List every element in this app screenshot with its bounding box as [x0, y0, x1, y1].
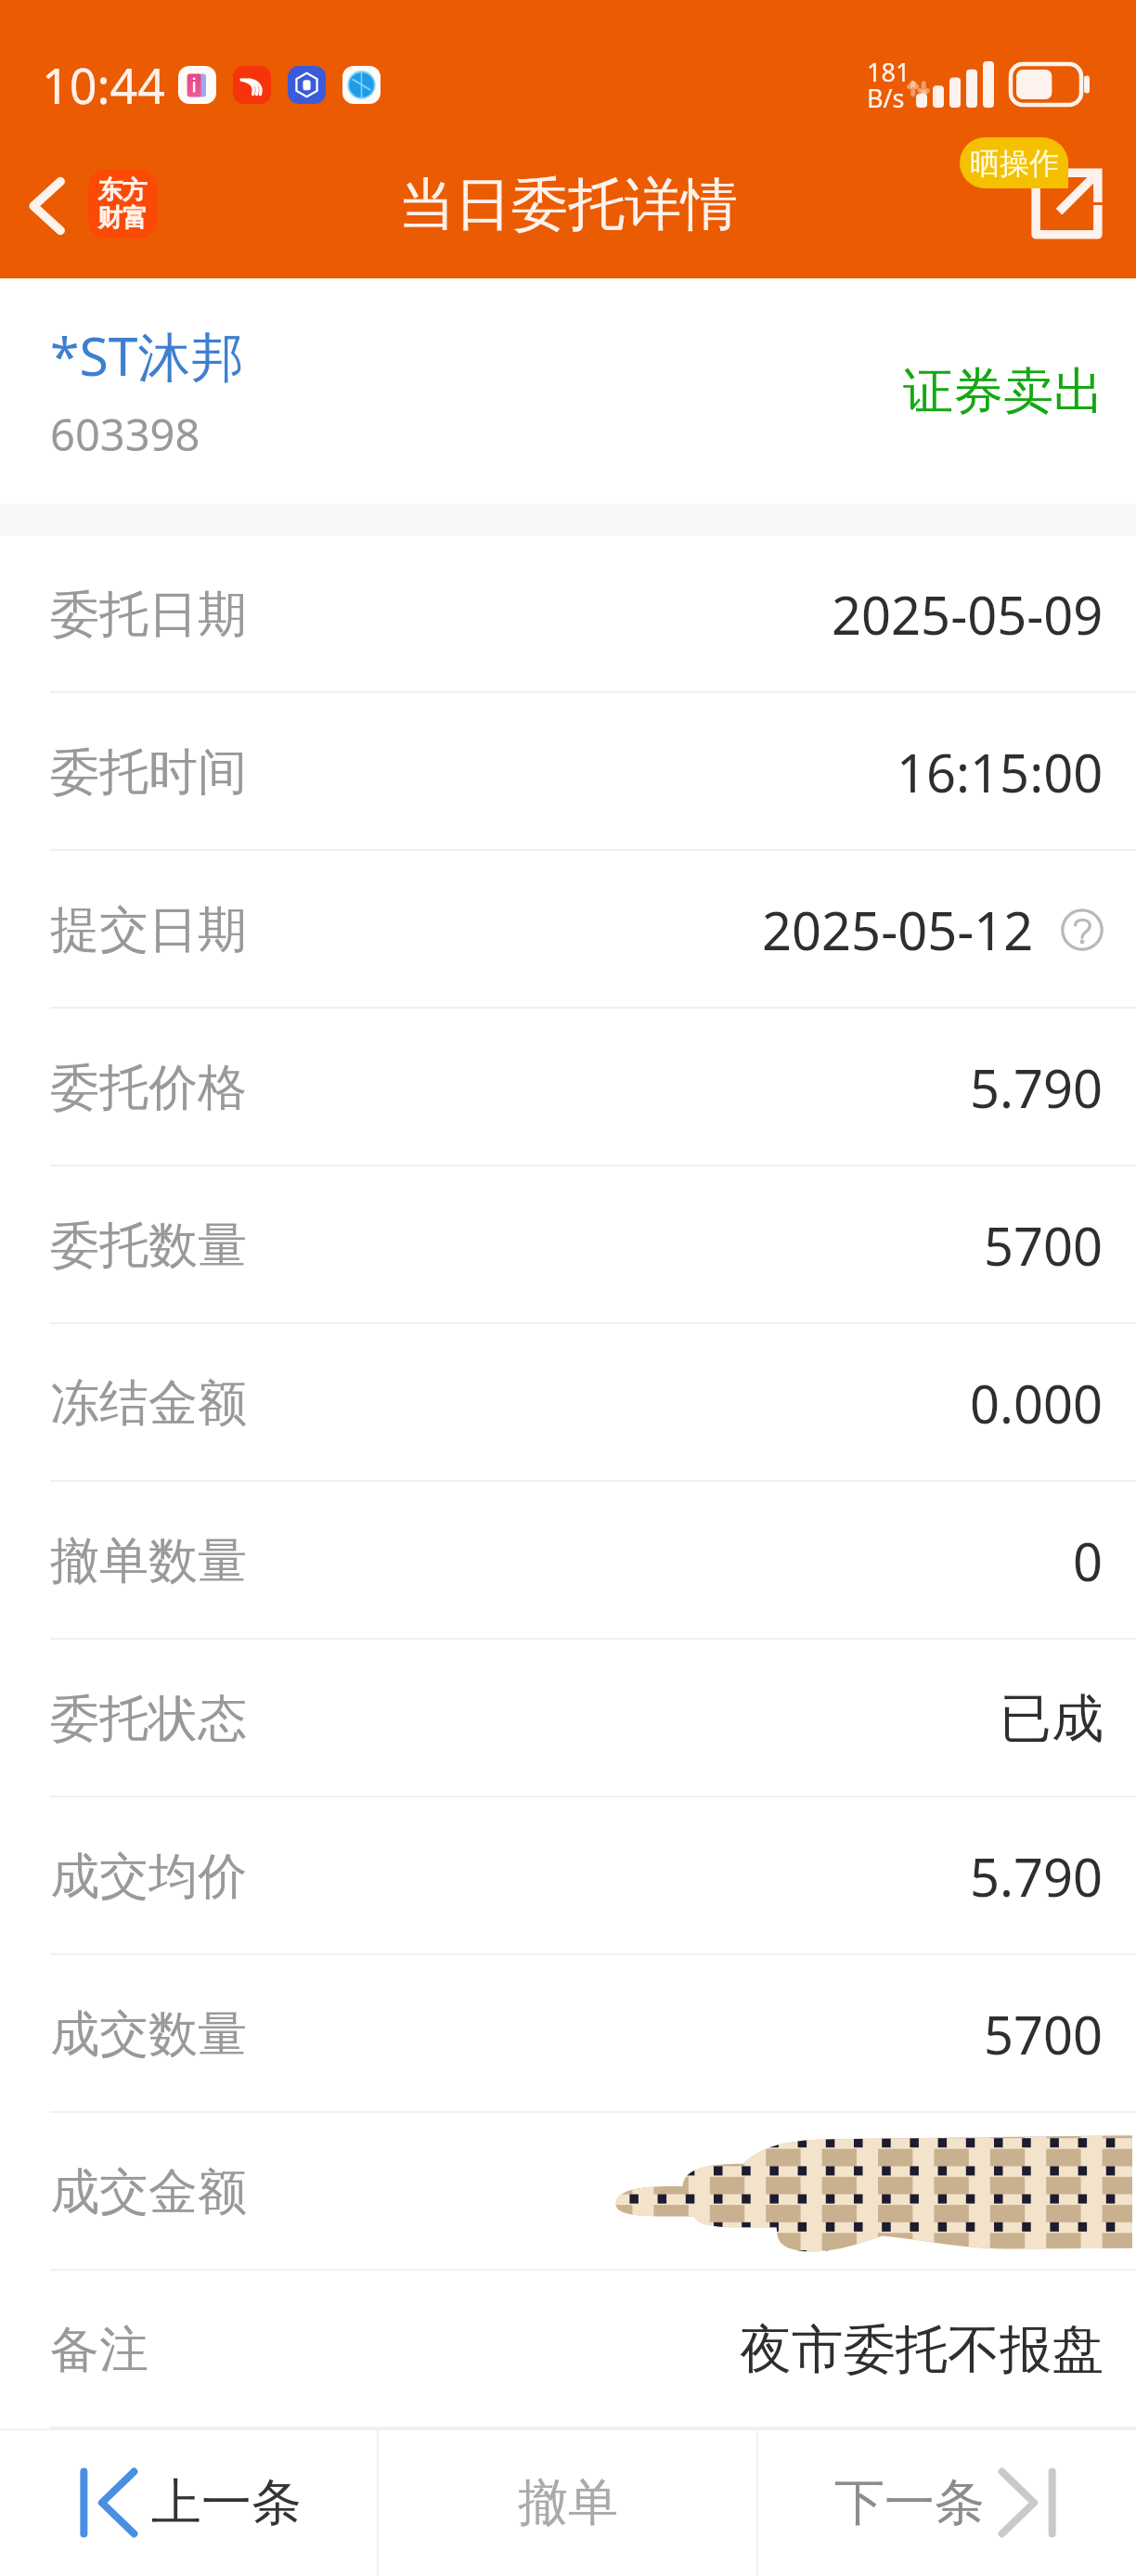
staticText: 已成: [1000, 1686, 1104, 1752]
button[interactable]: 委托状态: [0, 1640, 1136, 1797]
staticText: 16:15:00: [897, 737, 1104, 807]
button[interactable]: 委托价格: [0, 1009, 1136, 1166]
staticText: 2025-05-12: [762, 895, 1034, 965]
button[interactable]: 下一条: [758, 2428, 1136, 2576]
button[interactable]: 晒操作: [960, 137, 1068, 188]
staticText: 撤单: [518, 2471, 618, 2534]
staticText: 证券卖出: [903, 360, 1104, 423]
staticText: 5.790: [970, 1052, 1104, 1123]
staticText: 委托价格: [50, 1057, 247, 1119]
staticText: 0.000: [970, 1368, 1104, 1438]
button[interactable]: Back: [0, 130, 88, 278]
staticText: 0: [1073, 1526, 1104, 1596]
staticText: 委托时间: [50, 741, 247, 804]
staticText: 成交金额: [50, 2161, 247, 2223]
staticText: *ST沐邦: [50, 319, 244, 392]
staticText: 东方 财富: [97, 174, 148, 234]
button[interactable]: 委托日期: [0, 535, 1136, 693]
staticText: 603398: [50, 405, 200, 464]
button[interactable]: 提交日期: [0, 851, 1136, 1009]
button[interactable]: 冻结金额: [0, 1324, 1136, 1482]
button[interactable]: 成交金额: [0, 2113, 1136, 2271]
staticText: 晒操作: [970, 145, 1059, 182]
staticText: 委托状态: [50, 1688, 247, 1750]
button[interactable]: Share: [1006, 130, 1136, 278]
staticText: 成交数量: [50, 2003, 247, 2066]
button[interactable]: *ST沐邦: [0, 278, 1136, 504]
button[interactable]: 备注: [0, 2271, 1136, 2428]
staticText: 2025-05-09: [832, 579, 1104, 650]
button[interactable]: 上一条: [0, 2428, 377, 2576]
staticText: 成交均价: [50, 1846, 247, 1908]
staticText: 备注: [50, 2319, 148, 2381]
staticText: 委托数量: [50, 1215, 247, 1277]
staticText: 上一条: [151, 2471, 302, 2534]
staticText: 10:44: [42, 52, 165, 118]
staticText: 夜市委托不报盘: [740, 2317, 1104, 2383]
staticText: 181 B/s: [867, 55, 910, 115]
button[interactable]: 委托时间: [0, 693, 1136, 851]
button[interactable]: 成交数量: [0, 1955, 1136, 2113]
staticText: 委托日期: [50, 584, 247, 646]
staticText: 当日委托详情: [398, 169, 738, 240]
button[interactable]: 撤单: [379, 2428, 756, 2576]
staticText: 提交日期: [50, 899, 247, 961]
staticText: 5700: [984, 1210, 1104, 1281]
staticText: 5.790: [970, 1841, 1104, 1912]
staticText: 撤单数量: [50, 1530, 247, 1592]
button[interactable]: 成交均价: [0, 1797, 1136, 1955]
button[interactable]: 委托数量: [0, 1166, 1136, 1324]
button[interactable]: 撤单数量: [0, 1482, 1136, 1640]
staticText: 冻结金额: [50, 1372, 247, 1435]
staticText: 下一条: [834, 2471, 985, 2534]
staticText: 5700: [984, 1999, 1104, 2069]
